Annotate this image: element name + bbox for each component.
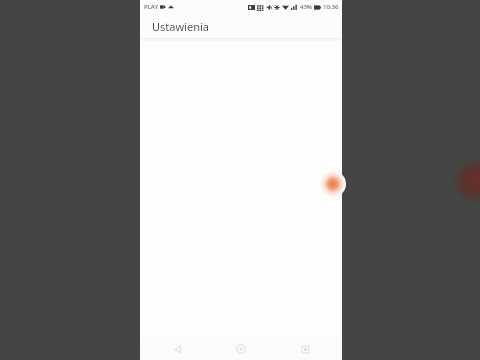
staticText: Ustawienia xyxy=(152,19,209,34)
staticText: PLAY xyxy=(144,3,158,11)
staticText: 43% xyxy=(300,3,312,11)
button[interactable]: Back xyxy=(162,338,192,360)
staticText: 10:36 xyxy=(323,3,339,11)
button[interactable]: Home xyxy=(226,338,256,360)
button[interactable]: Ustawienia xyxy=(140,14,342,38)
button[interactable]: Recent apps xyxy=(290,338,320,360)
